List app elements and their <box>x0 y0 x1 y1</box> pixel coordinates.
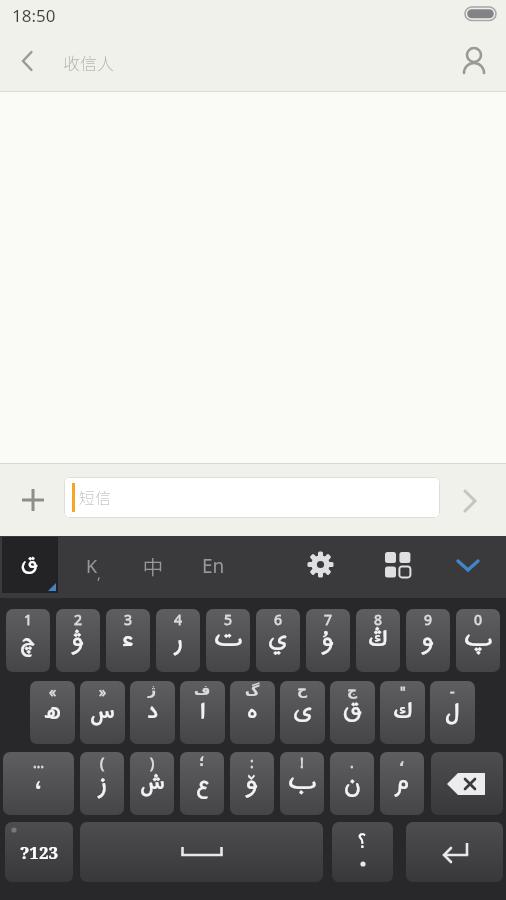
button[interactable]: ؛ <box>180 752 224 815</box>
staticText: ! <box>300 753 304 772</box>
button[interactable]: ?123 <box>5 822 73 882</box>
staticText: En <box>202 553 225 579</box>
staticText: ، <box>35 762 42 803</box>
staticText: 收信人 <box>63 50 114 75</box>
staticText: م <box>395 759 409 807</box>
staticText: 2 <box>74 610 83 629</box>
button[interactable]: ! <box>280 752 324 815</box>
staticText: ى <box>293 688 313 736</box>
staticText: 4 <box>174 610 183 629</box>
staticText: 短信 <box>79 485 112 508</box>
staticText: ۇ <box>322 616 335 664</box>
staticText: س <box>90 688 115 736</box>
staticText: ق <box>343 688 363 736</box>
button[interactable]: - <box>430 681 475 744</box>
staticText: » <box>99 682 107 701</box>
staticText: ؛ <box>199 753 205 769</box>
staticText: ش <box>140 759 165 807</box>
button[interactable] <box>19 50 35 72</box>
button[interactable]: 2 <box>56 609 100 672</box>
button[interactable] <box>461 45 487 75</box>
staticText: ز <box>98 759 107 807</box>
staticText: ر <box>174 616 183 664</box>
button[interactable] <box>431 752 503 815</box>
button[interactable] <box>406 822 503 882</box>
button[interactable]: 9 <box>406 609 450 672</box>
button[interactable]: ف <box>180 681 225 744</box>
staticText: ە <box>247 688 258 736</box>
button[interactable]: . <box>330 752 374 815</box>
staticText: ا <box>200 688 206 736</box>
button[interactable]: 3 <box>106 609 150 672</box>
staticText: ۋ <box>72 616 85 664</box>
button[interactable]: » <box>80 681 125 744</box>
staticText: - <box>450 682 455 701</box>
staticText: 5 <box>224 610 233 629</box>
staticText: ت <box>214 616 243 664</box>
button[interactable]: 4 <box>156 609 200 672</box>
button[interactable] <box>385 552 411 578</box>
staticText: ھ <box>44 688 61 736</box>
staticText: K <box>86 554 98 579</box>
button[interactable]: 中 <box>122 536 183 596</box>
button[interactable] <box>22 489 44 511</box>
button[interactable]: 1 <box>6 609 50 672</box>
button[interactable]: K <box>61 536 122 596</box>
staticText: ) <box>150 753 155 772</box>
button[interactable]: 0 <box>456 609 500 672</box>
staticText: : <box>250 753 254 772</box>
button[interactable]: 5 <box>206 609 250 672</box>
button[interactable]: گ <box>230 681 275 744</box>
button[interactable]: ژ <box>130 681 175 744</box>
staticText: 0 <box>474 610 483 629</box>
button[interactable]: ق <box>2 537 58 593</box>
button[interactable]: ( <box>80 752 124 815</box>
staticText: پ <box>464 616 493 664</box>
staticText: 1 <box>24 610 33 629</box>
button[interactable]: " <box>380 681 425 744</box>
button[interactable] <box>307 551 334 578</box>
staticText: « <box>49 682 57 701</box>
staticText: 8 <box>374 610 383 629</box>
staticText: ف <box>194 682 211 698</box>
button[interactable] <box>456 559 480 572</box>
button[interactable]: 6 <box>256 609 300 672</box>
staticText: ع <box>196 759 209 807</box>
staticText: ( <box>100 753 105 772</box>
button[interactable]: 短信 <box>64 477 440 518</box>
staticText: . <box>350 753 354 772</box>
staticText: 中 <box>143 552 163 581</box>
staticText: ق <box>21 544 39 587</box>
button[interactable]: ، <box>380 752 424 815</box>
staticText: ب <box>288 759 317 807</box>
staticText: ڭ <box>368 616 388 664</box>
staticText: ح <box>297 682 308 698</box>
staticText: 6 <box>274 610 283 629</box>
staticText: … <box>33 753 45 772</box>
button[interactable]: « <box>30 681 75 744</box>
staticText: ل <box>445 688 460 736</box>
staticText: ك <box>393 688 413 736</box>
staticText: " <box>400 682 406 701</box>
button[interactable] <box>461 489 479 513</box>
staticText: و <box>422 616 435 664</box>
staticText: ج <box>347 682 358 698</box>
staticText: د <box>147 688 159 736</box>
staticText: 9 <box>424 610 433 629</box>
button[interactable]: … <box>3 752 74 815</box>
staticText: ۆ <box>246 759 259 807</box>
button[interactable]: ) <box>130 752 174 815</box>
button[interactable]: 7 <box>306 609 350 672</box>
button[interactable]: ج <box>330 681 375 744</box>
staticText: 18:50 <box>12 4 56 27</box>
staticText: 7 <box>324 610 333 629</box>
button[interactable]: En <box>183 536 244 596</box>
button[interactable] <box>80 822 323 882</box>
staticText: ي <box>268 616 288 664</box>
staticText: ?123 <box>20 841 59 864</box>
button[interactable]: : <box>230 752 274 815</box>
button[interactable]: 8 <box>356 609 400 672</box>
staticText: 3 <box>124 610 133 629</box>
button[interactable]: ؟ <box>332 822 393 882</box>
button[interactable]: ح <box>280 681 325 744</box>
